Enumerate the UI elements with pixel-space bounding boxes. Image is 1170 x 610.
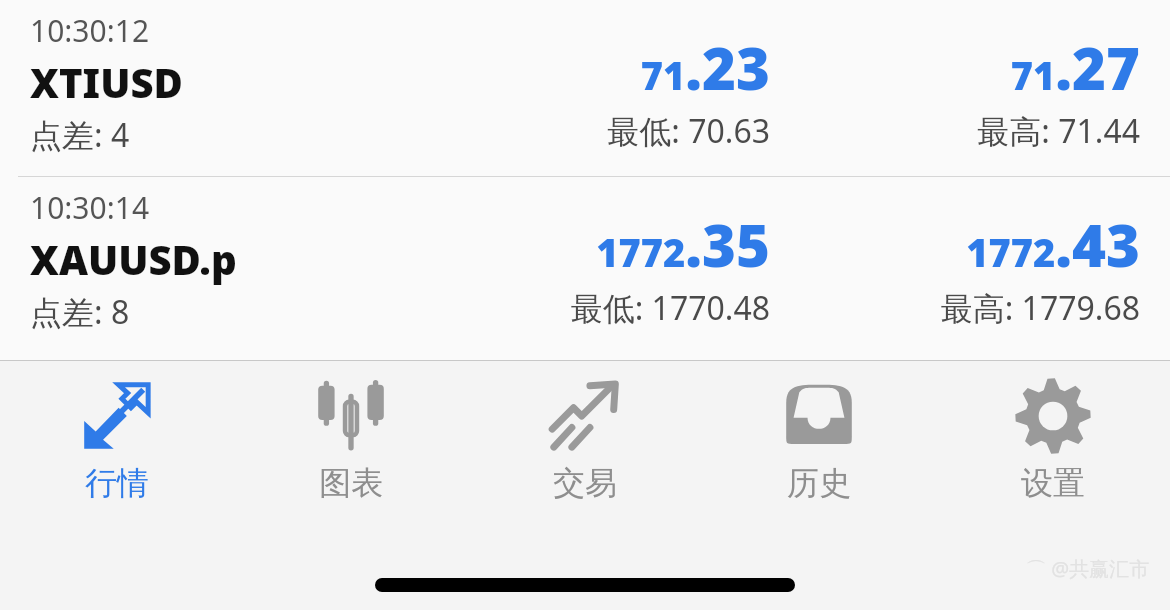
staticText: 71.23 xyxy=(370,28,770,107)
button[interactable]: 行情 xyxy=(0,361,234,513)
staticText: 点差: 4 xyxy=(30,113,130,157)
staticText: 行情 xyxy=(85,463,149,503)
staticText: 最低: 1770.48 xyxy=(370,286,770,330)
button[interactable]: 10:30:14 xyxy=(0,177,1170,353)
staticText: 1772.43 xyxy=(740,205,1140,284)
staticText: 历史 xyxy=(787,463,851,503)
staticText: XAUUSD.p xyxy=(30,232,237,286)
staticText: 1772.35 xyxy=(370,205,770,284)
staticText: 71.27 xyxy=(740,28,1140,107)
button[interactable]: 交易 xyxy=(468,361,702,513)
button[interactable]: 10:30:12 xyxy=(0,0,1170,176)
button[interactable]: 图表 xyxy=(234,361,468,513)
staticText: XTIUSD xyxy=(30,55,183,109)
staticText: 10:30:14 xyxy=(30,187,150,228)
staticText: 图表 xyxy=(319,463,383,503)
staticText: 最高: 71.44 xyxy=(740,109,1140,153)
staticText: 交易 xyxy=(553,463,617,503)
staticText: ⌒ @共赢汇市 xyxy=(1026,555,1150,582)
button[interactable]: 历史 xyxy=(702,361,936,513)
staticText: 设置 xyxy=(1021,463,1085,503)
button[interactable]: 设置 xyxy=(936,361,1170,513)
staticText: 最低: 70.63 xyxy=(370,109,770,153)
staticText: 最高: 1779.68 xyxy=(740,286,1140,330)
staticText: 10:30:12 xyxy=(30,10,150,51)
staticText: 点差: 8 xyxy=(30,290,130,334)
